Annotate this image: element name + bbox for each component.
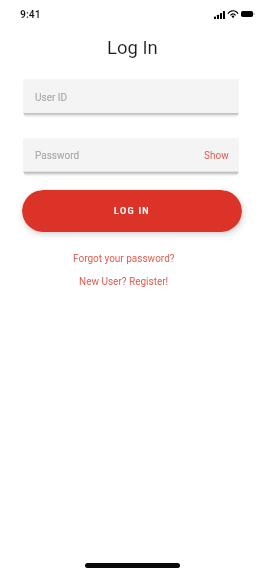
button[interactable]: New User? Register!	[75, 273, 173, 291]
button[interactable]: Forgot your password?	[69, 250, 179, 268]
button[interactable]: Password	[35, 140, 204, 171]
button[interactable]: Show	[204, 140, 229, 171]
staticText: Forgot your password?	[73, 253, 175, 265]
staticText: User ID	[35, 92, 68, 104]
staticText: LOG IN	[114, 206, 150, 217]
staticText: Password	[35, 150, 80, 162]
staticText: 9:41	[20, 8, 41, 20]
staticText: Show	[204, 150, 229, 162]
staticText: Log In	[107, 37, 158, 59]
staticText: New User? Register!	[79, 276, 169, 288]
button[interactable]: User ID	[23, 80, 239, 113]
button[interactable]: LOG IN	[22, 190, 242, 232]
